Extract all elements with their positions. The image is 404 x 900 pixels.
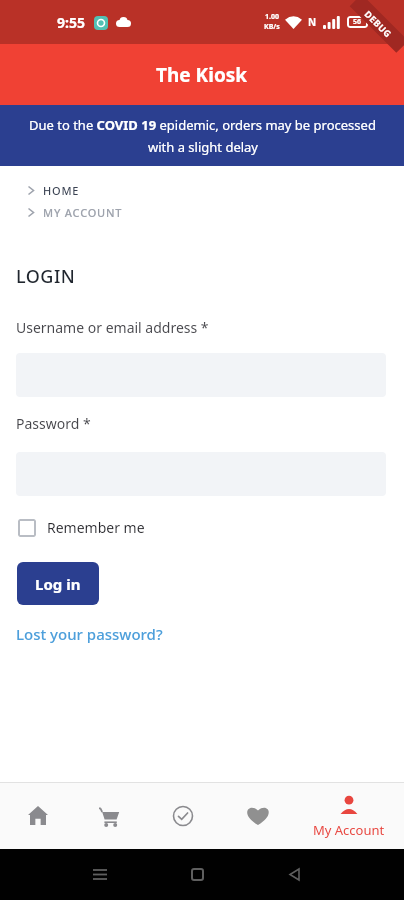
- staticText: Password *: [16, 414, 91, 433]
- button[interactable]: HOME: [28, 179, 80, 201]
- button[interactable]: [0, 783, 76, 849]
- staticText: Due to the COVID 19 epidemic, orders may…: [29, 116, 376, 134]
- staticText: Remember me: [47, 518, 145, 537]
- button[interactable]: [76, 783, 144, 849]
- staticText: with a slight delay: [148, 138, 258, 156]
- staticText: The Kiosk: [156, 62, 248, 88]
- staticText: MY ACCOUNT: [43, 205, 123, 220]
- button[interactable]: Lost your password?: [16, 624, 163, 644]
- button[interactable]: MY ACCOUNT: [28, 201, 123, 223]
- staticText: 56: [353, 17, 362, 27]
- staticText: DEBUG: [362, 8, 395, 40]
- staticText: LOGIN: [16, 264, 76, 289]
- staticText: 1.00: [265, 12, 279, 22]
- button[interactable]: [144, 783, 222, 849]
- staticText: KB/s: [264, 22, 280, 32]
- button[interactable]: My Account: [294, 783, 404, 849]
- button[interactable]: Log in: [17, 562, 99, 605]
- staticText: Log in: [35, 574, 81, 594]
- button[interactable]: [222, 783, 294, 849]
- staticText: HOME: [43, 183, 80, 198]
- staticText: Username or email address *: [16, 318, 209, 337]
- staticText: 9:55: [57, 13, 85, 32]
- staticText: N: [308, 15, 317, 29]
- button[interactable]: Remember me: [18, 518, 145, 537]
- staticText: My Account: [313, 821, 385, 839]
